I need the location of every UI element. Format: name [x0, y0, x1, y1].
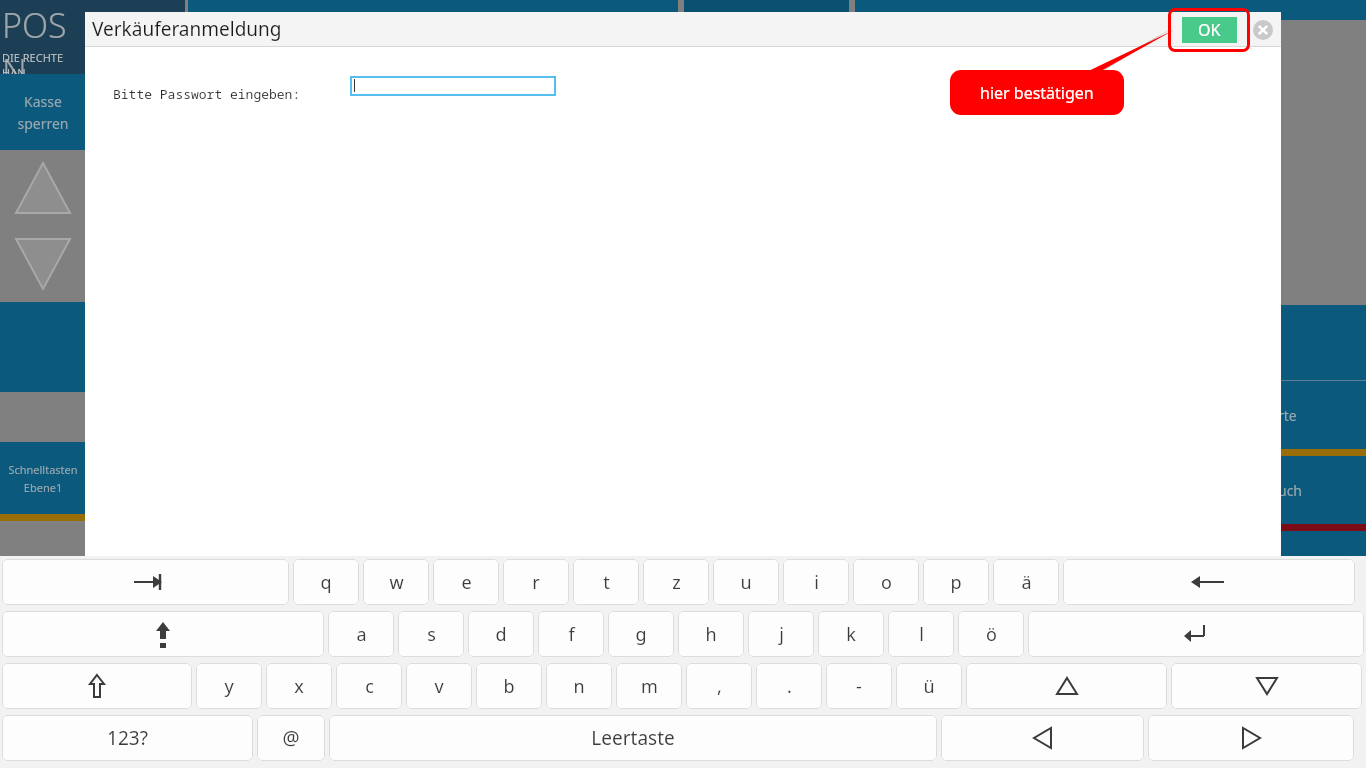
staticText: DIE RECHTE HAN: [2, 50, 85, 74]
button[interactable]: e: [433, 559, 499, 605]
button[interactable]: Right: [1148, 715, 1354, 761]
staticText: c: [365, 674, 374, 699]
staticText: g: [635, 622, 647, 647]
button[interactable]: d: [468, 611, 534, 657]
button[interactable]: Tab: [2, 559, 289, 605]
staticText: rte: [1278, 406, 1297, 425]
staticText: l: [919, 622, 924, 647]
staticText: Leertaste: [591, 725, 675, 751]
staticText: hier bestätigen: [980, 82, 1094, 104]
staticText: Verkäuferanmeldung: [92, 16, 282, 42]
button[interactable]: Shift: [2, 663, 192, 709]
button[interactable]: n: [546, 663, 612, 709]
button[interactable]: u: [713, 559, 779, 605]
staticText: d: [495, 622, 507, 647]
button[interactable]: Kasse sperren: [0, 74, 85, 150]
staticText: m: [641, 674, 658, 699]
staticText: y: [224, 674, 234, 699]
staticText: n: [573, 674, 585, 699]
button[interactable]: ä: [993, 559, 1059, 605]
button[interactable]: rte: [1276, 381, 1366, 449]
button[interactable]: -: [826, 663, 892, 709]
staticText: u: [740, 570, 752, 595]
button[interactable]: Enter: [1028, 611, 1364, 657]
staticText: 123?: [107, 725, 148, 751]
button[interactable]: v: [406, 663, 472, 709]
staticText: e: [461, 570, 472, 595]
button[interactable]: Schnelltasten Ebene1: [0, 442, 85, 514]
staticText: p: [950, 570, 962, 595]
staticText: b: [503, 674, 515, 699]
button[interactable]: o: [853, 559, 919, 605]
button[interactable]: OK: [1168, 8, 1250, 52]
staticText: s: [427, 622, 436, 647]
button[interactable]: c: [336, 663, 402, 709]
staticText: f: [568, 622, 575, 647]
button[interactable]: f: [538, 611, 604, 657]
button[interactable]: Scroll down: [0, 226, 85, 302]
button[interactable]: Close: [1253, 20, 1273, 40]
button[interactable]: g: [608, 611, 674, 657]
button[interactable]: p: [923, 559, 989, 605]
button[interactable]: Left: [941, 715, 1144, 761]
button[interactable]: m: [616, 663, 682, 709]
button[interactable]: Caps lock: [2, 611, 324, 657]
button[interactable]: Up: [966, 663, 1167, 709]
button[interactable]: [1276, 305, 1366, 380]
staticText: ä: [1021, 570, 1032, 595]
staticText: Bitte Passwort eingeben:: [113, 85, 301, 103]
staticText: a: [356, 622, 367, 647]
staticText: z: [672, 570, 681, 595]
button[interactable]: x: [266, 663, 332, 709]
button[interactable]: ,: [686, 663, 752, 709]
button[interactable]: i: [783, 559, 849, 605]
staticText: Schnelltasten Ebene1: [8, 462, 78, 495]
staticText: ö: [986, 622, 997, 647]
button[interactable]: z: [643, 559, 709, 605]
staticText: ü: [923, 674, 935, 699]
staticText: i: [814, 570, 819, 595]
button[interactable]: .: [756, 663, 822, 709]
button[interactable]: ö: [958, 611, 1024, 657]
staticText: uch: [1278, 481, 1303, 500]
staticText: w: [389, 570, 404, 595]
button[interactable]: b: [476, 663, 542, 709]
button[interactable]: @: [257, 715, 325, 761]
staticText: h: [705, 622, 717, 647]
button[interactable]: r: [503, 559, 569, 605]
staticText: Kasse sperren: [17, 92, 69, 133]
staticText: v: [434, 674, 444, 699]
staticText: o: [881, 570, 892, 595]
button[interactable]: t: [573, 559, 639, 605]
staticText: t: [603, 570, 610, 595]
button[interactable]: Scroll up: [0, 150, 85, 226]
staticText: @: [282, 725, 300, 751]
staticText: POSN: [2, 2, 85, 74]
button[interactable]: y: [196, 663, 262, 709]
button[interactable]: h: [678, 611, 744, 657]
button[interactable]: 123?: [2, 715, 253, 761]
button[interactable]: [350, 76, 556, 96]
staticText: q: [320, 570, 332, 595]
button[interactable]: q: [293, 559, 359, 605]
staticText: k: [846, 622, 856, 647]
staticText: x: [294, 674, 304, 699]
button[interactable]: l: [888, 611, 954, 657]
staticText: OK: [1198, 19, 1221, 41]
button[interactable]: k: [818, 611, 884, 657]
staticText: ,: [717, 674, 722, 699]
button[interactable]: uch: [1276, 456, 1366, 524]
staticText: r: [532, 570, 540, 595]
staticText: -: [856, 674, 862, 699]
button[interactable]: Backspace: [1063, 559, 1355, 605]
button[interactable]: j: [748, 611, 814, 657]
button[interactable]: s: [398, 611, 464, 657]
button[interactable]: w: [363, 559, 429, 605]
button[interactable]: ü: [896, 663, 962, 709]
button[interactable]: Down: [1171, 663, 1362, 709]
staticText: .: [787, 674, 792, 699]
button[interactable]: a: [328, 611, 394, 657]
button[interactable]: Leertaste: [329, 715, 937, 761]
